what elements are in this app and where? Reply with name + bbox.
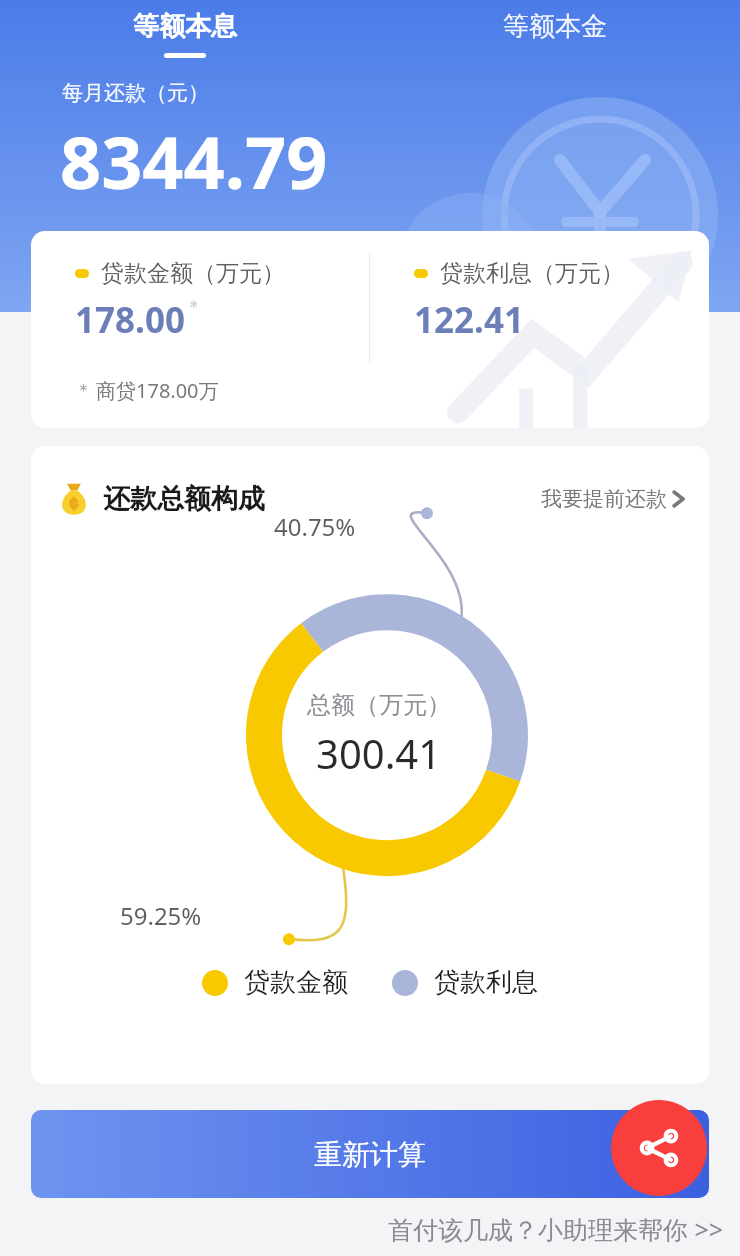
staticText: 首付该几成？小助理来帮你 >> [388,1212,724,1246]
staticText: 300.41 [316,726,442,780]
staticText: 178.00 [75,296,185,344]
staticText: 8344.79 [60,112,328,210]
button[interactable]: 贷款利息 [392,966,538,999]
staticText: 贷款利息（万元） [440,259,624,288]
staticText: ＊ [75,380,92,401]
staticText: 还款总额构成 [103,482,265,516]
button[interactable]: 我要提前还款 [537,482,689,516]
staticText: 59.25% [120,899,202,932]
button[interactable]: 等额本金 [370,10,740,43]
staticText: ＊ [185,296,203,319]
staticText: 122.41 [414,296,524,344]
staticText: 我要提前还款 [541,486,667,512]
button[interactable]: 首付该几成？小助理来帮你 >> [0,1212,724,1246]
staticText: 贷款金额（万元） [101,259,285,288]
staticText: 贷款利息 [434,966,538,999]
button[interactable]: Share [611,1100,707,1196]
staticText: 等额本息 [133,10,237,43]
button[interactable]: 重新计算 [31,1110,709,1198]
staticText: 每月还款（元） [62,80,209,106]
staticText: 贷款金额 [244,966,348,999]
button[interactable]: 等额本息 [0,10,370,58]
staticText: 总额（万元） [307,690,451,720]
staticText: 商贷178.00万 [96,377,219,404]
button[interactable]: 贷款金额 [202,966,348,999]
staticText: 等额本金 [503,10,607,43]
staticText: 重新计算 [314,1137,426,1172]
staticText: 40.75% [274,510,356,543]
